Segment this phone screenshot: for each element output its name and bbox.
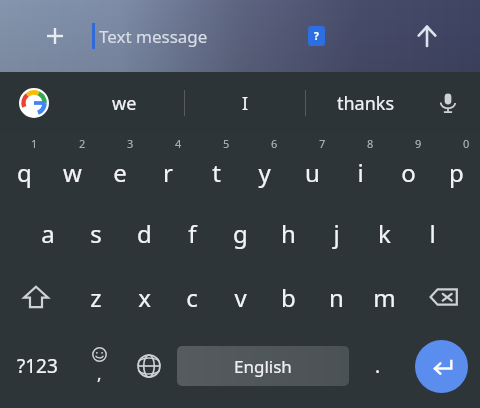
- staticText: l: [429, 217, 436, 250]
- button[interactable]: 8: [336, 134, 384, 202]
- button[interactable]: Backspace: [408, 264, 480, 330]
- button[interactable]: 2: [48, 134, 96, 202]
- staticText: e: [113, 156, 127, 189]
- staticText: z: [90, 281, 102, 314]
- staticText: 2: [79, 136, 86, 151]
- staticText: 6: [271, 136, 278, 151]
- staticText: 4: [175, 136, 182, 151]
- button[interactable]: 7: [288, 134, 336, 202]
- staticText: q: [17, 156, 32, 189]
- staticText: p: [449, 156, 464, 189]
- staticText: 1: [31, 136, 38, 151]
- button[interactable]: Shift: [0, 264, 72, 330]
- button[interactable]: Send: [410, 19, 444, 53]
- staticText: x: [138, 281, 151, 314]
- staticText: o: [401, 156, 416, 189]
- button[interactable]: x: [120, 264, 168, 330]
- staticText: 5: [223, 136, 230, 151]
- staticText: b: [281, 281, 296, 314]
- staticText: r: [163, 156, 173, 189]
- staticText: d: [137, 217, 152, 250]
- button[interactable]: thanks: [306, 72, 426, 134]
- staticText: I: [242, 91, 249, 116]
- staticText: j: [333, 217, 340, 250]
- staticText: m: [373, 281, 396, 314]
- button[interactable]: 0: [432, 134, 480, 202]
- staticText: 7: [319, 136, 326, 151]
- button[interactable]: s: [72, 202, 120, 264]
- button[interactable]: h: [264, 202, 312, 264]
- button[interactable]: f: [168, 202, 216, 264]
- button[interactable]: ?123: [0, 330, 75, 402]
- staticText: 9: [415, 136, 422, 151]
- button[interactable]: k: [360, 202, 408, 264]
- staticText: ?: [314, 29, 319, 43]
- staticText: Text message: [99, 25, 208, 48]
- staticText: s: [90, 217, 102, 250]
- button[interactable]: 4: [144, 134, 192, 202]
- staticText: f: [188, 217, 197, 250]
- staticText: h: [281, 217, 296, 250]
- staticText: a: [41, 217, 55, 250]
- button[interactable]: SIM info: [308, 26, 325, 46]
- button[interactable]: m: [360, 264, 408, 330]
- button[interactable]: .: [353, 330, 402, 402]
- button[interactable]: c: [168, 264, 216, 330]
- button[interactable]: Emoji and comma: [75, 330, 124, 402]
- button[interactable]: l: [408, 202, 456, 264]
- button[interactable]: English: [177, 346, 349, 386]
- button[interactable]: we: [64, 72, 184, 134]
- button[interactable]: j: [312, 202, 360, 264]
- staticText: ,: [97, 362, 102, 385]
- button[interactable]: z: [72, 264, 120, 330]
- staticText: ?123: [17, 353, 58, 379]
- staticText: 8: [367, 136, 374, 151]
- button[interactable]: 5: [192, 134, 240, 202]
- button[interactable]: b: [264, 264, 312, 330]
- button[interactable]: Change language: [124, 330, 173, 402]
- staticText: n: [329, 281, 344, 314]
- staticText: t: [212, 156, 221, 189]
- button[interactable]: Enter: [415, 340, 468, 393]
- staticText: thanks: [337, 91, 395, 116]
- button[interactable]: v: [216, 264, 264, 330]
- staticText: .: [375, 353, 381, 379]
- button[interactable]: g: [216, 202, 264, 264]
- staticText: u: [305, 156, 320, 189]
- button[interactable]: Add attachment: [40, 21, 70, 51]
- button[interactable]: 3: [96, 134, 144, 202]
- staticText: g: [233, 217, 248, 250]
- button[interactable]: 6: [240, 134, 288, 202]
- staticText: 0: [463, 136, 470, 151]
- staticText: y: [258, 156, 271, 189]
- button[interactable]: d: [120, 202, 168, 264]
- button[interactable]: 1: [0, 134, 48, 202]
- staticText: w: [63, 156, 82, 189]
- button[interactable]: Google search: [16, 85, 52, 121]
- button[interactable]: Voice input: [430, 85, 466, 121]
- staticText: i: [357, 156, 364, 189]
- staticText: English: [234, 355, 292, 378]
- staticText: 3: [127, 136, 134, 151]
- button[interactable]: I: [185, 72, 305, 134]
- staticText: c: [186, 281, 198, 314]
- button[interactable]: 9: [384, 134, 432, 202]
- staticText: v: [234, 281, 247, 314]
- button[interactable]: n: [312, 264, 360, 330]
- staticText: k: [378, 217, 391, 250]
- staticText: we: [112, 91, 137, 116]
- button[interactable]: a: [24, 202, 72, 264]
